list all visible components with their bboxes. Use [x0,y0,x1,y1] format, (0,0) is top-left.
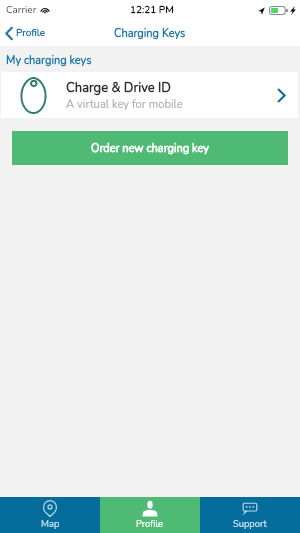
staticText: A virtual key for mobile [66,97,183,112]
staticText: Charge & Drive ID [66,79,172,97]
staticText: Charging Keys [114,26,186,41]
staticText: Support [233,518,267,531]
button[interactable]: Order new charging key [12,131,288,165]
button[interactable]: Profile [100,497,200,533]
staticText: 12:21 PM [130,3,174,17]
button[interactable]: Profile [0,22,56,44]
button[interactable]: Charge & Drive ID [1,72,298,118]
staticText: Order new charging key [91,141,209,156]
button[interactable]: Support [200,497,300,533]
staticText: Map [41,518,60,531]
staticText: My charging keys [6,53,92,68]
staticText: Profile [136,518,164,531]
button[interactable]: Map [0,497,100,533]
staticText: Carrier [6,3,37,17]
staticText: Profile [16,26,46,40]
